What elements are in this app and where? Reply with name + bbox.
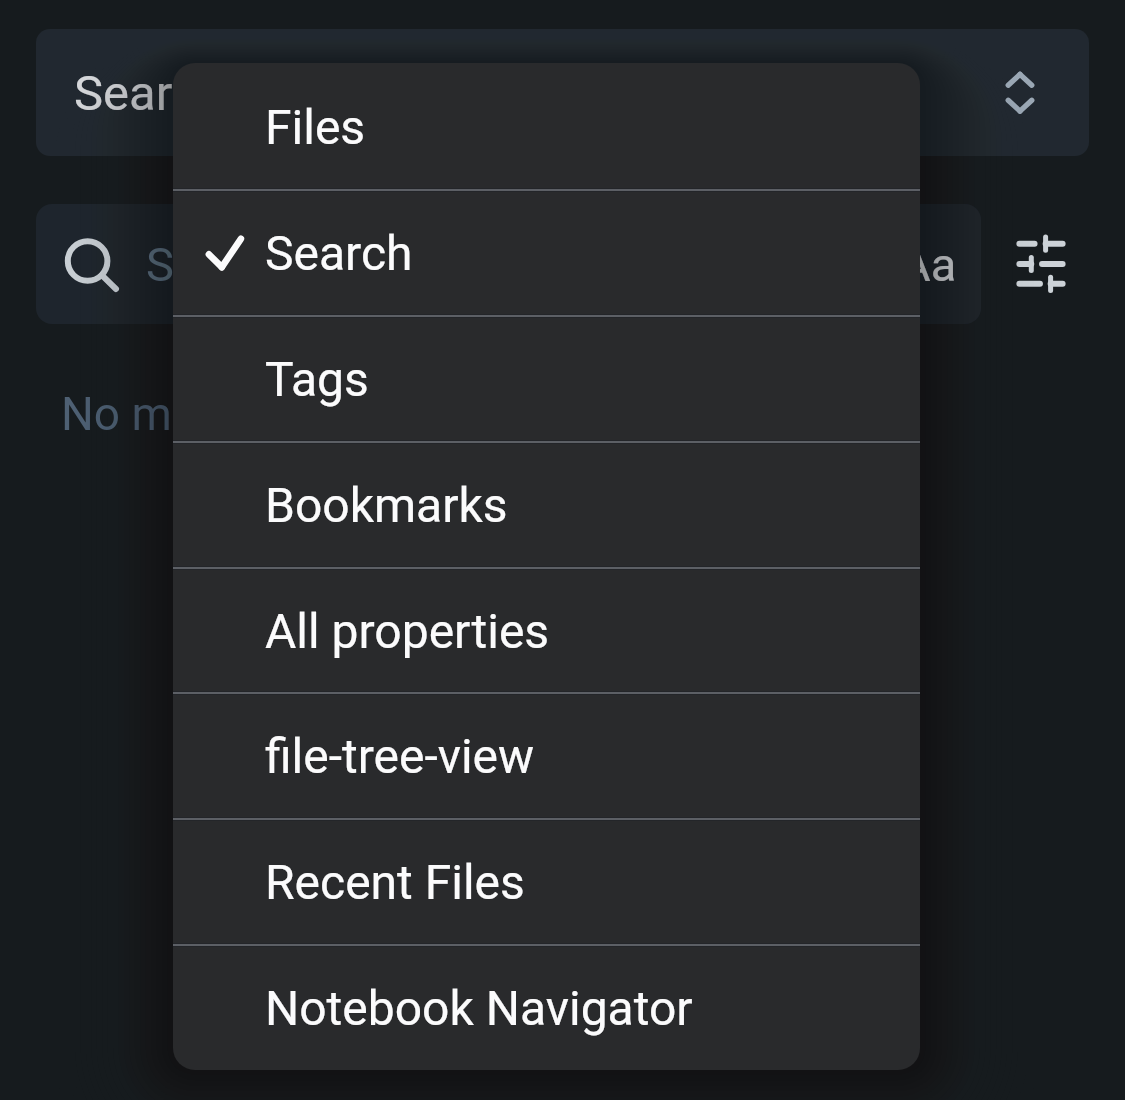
button[interactable]: Search... [36, 204, 981, 324]
staticText: Bookmarks [265, 477, 508, 533]
button[interactable]: Notebook Navigator [173, 944, 920, 1070]
staticText: Tags [265, 351, 369, 407]
button[interactable]: Search [173, 189, 920, 315]
staticText: Search [74, 65, 225, 122]
button[interactable]: Files [173, 63, 920, 189]
button[interactable]: Recent Files [173, 818, 920, 944]
staticText: All properties [265, 603, 550, 659]
button[interactable]: Tags [173, 315, 920, 441]
button[interactable]: file-tree-view [173, 692, 920, 818]
staticText: Notebook Navigator [265, 980, 693, 1036]
staticText: Search... [146, 237, 328, 292]
staticText: file-tree-view [265, 728, 535, 784]
button[interactable]: Search [36, 29, 1089, 156]
staticText: Files [265, 99, 366, 155]
staticText: Search [265, 225, 413, 281]
staticText: Aa [900, 237, 957, 292]
button[interactable]: Bookmarks [173, 441, 920, 567]
staticText: Recent Files [265, 854, 525, 910]
button[interactable]: All properties [173, 567, 920, 693]
staticText: No matches found [61, 387, 440, 441]
button[interactable]: Search options [996, 224, 1086, 300]
